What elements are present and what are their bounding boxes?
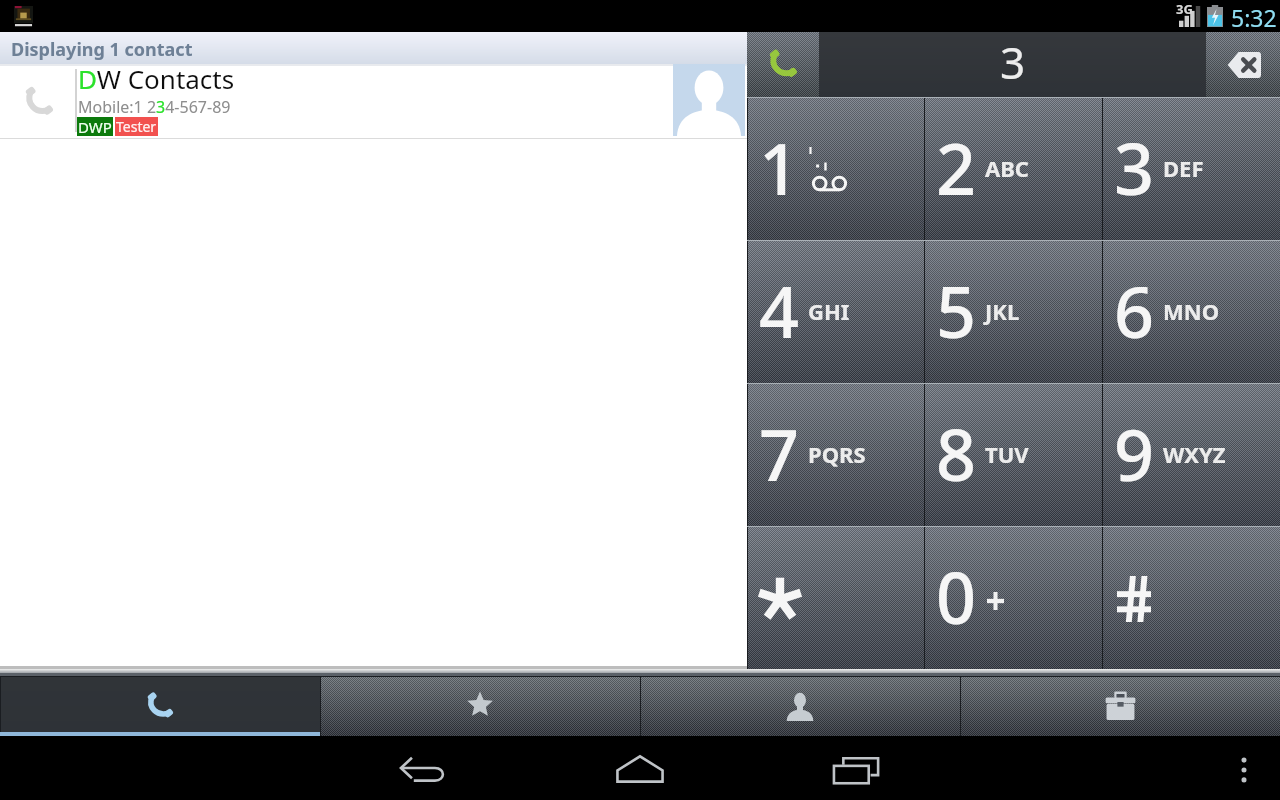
staticText: DEF [1163, 153, 1204, 183]
staticText: 5:32 [1231, 2, 1277, 33]
staticText: DWP [78, 117, 112, 136]
staticText: 7 [759, 406, 800, 501]
staticText: PQRS [808, 439, 866, 469]
button[interactable]: Favorites [320, 676, 640, 736]
button[interactable]: 9 [1102, 383, 1280, 526]
staticText: 3G [1176, 0, 1193, 18]
button[interactable]: 1 [747, 97, 924, 240]
staticText: 1 [759, 120, 800, 215]
staticText: 5 [936, 263, 977, 358]
button[interactable]: 2 [924, 97, 1102, 240]
staticText: MNO [1163, 296, 1220, 326]
button[interactable]: 3 [819, 32, 1206, 97]
staticText: 9 [1114, 406, 1155, 501]
staticText: 3 [1114, 120, 1155, 215]
staticText: 4 [759, 263, 800, 358]
staticText: TUV [985, 439, 1029, 469]
staticText: Displaying 1 contact [11, 37, 193, 62]
button[interactable]: DW Contacts [0, 66, 747, 138]
button[interactable]: 6 [1102, 240, 1280, 383]
staticText: Mobile:1 234-567-89 [78, 96, 231, 118]
button[interactable]: Delete [1206, 32, 1280, 97]
staticText: GHI [808, 296, 850, 326]
button[interactable]: 8 [924, 383, 1102, 526]
staticText: 3 [1000, 32, 1026, 92]
button[interactable]: Call [747, 32, 819, 97]
button[interactable]: 0 [924, 526, 1102, 669]
button[interactable]: Phone [0, 676, 320, 736]
button[interactable]: Groups [960, 676, 1280, 736]
button[interactable] [1102, 526, 1280, 669]
button[interactable]: 7 [747, 383, 924, 526]
staticText: ABC [985, 153, 1029, 183]
button[interactable]: 3 [1102, 97, 1280, 240]
staticText: JKL [985, 296, 1020, 326]
staticText: 6 [1114, 263, 1155, 358]
staticText: 2 [936, 120, 977, 215]
staticText: WXYZ [1163, 439, 1226, 469]
staticText: DW Contacts [78, 61, 235, 96]
staticText: Tester [116, 117, 157, 136]
button[interactable]: 4 [747, 240, 924, 383]
button[interactable] [747, 526, 924, 669]
staticText: 0 [936, 549, 977, 644]
button[interactable]: Contacts [640, 676, 960, 736]
button[interactable]: 5 [924, 240, 1102, 383]
staticText: 8 [936, 406, 977, 501]
